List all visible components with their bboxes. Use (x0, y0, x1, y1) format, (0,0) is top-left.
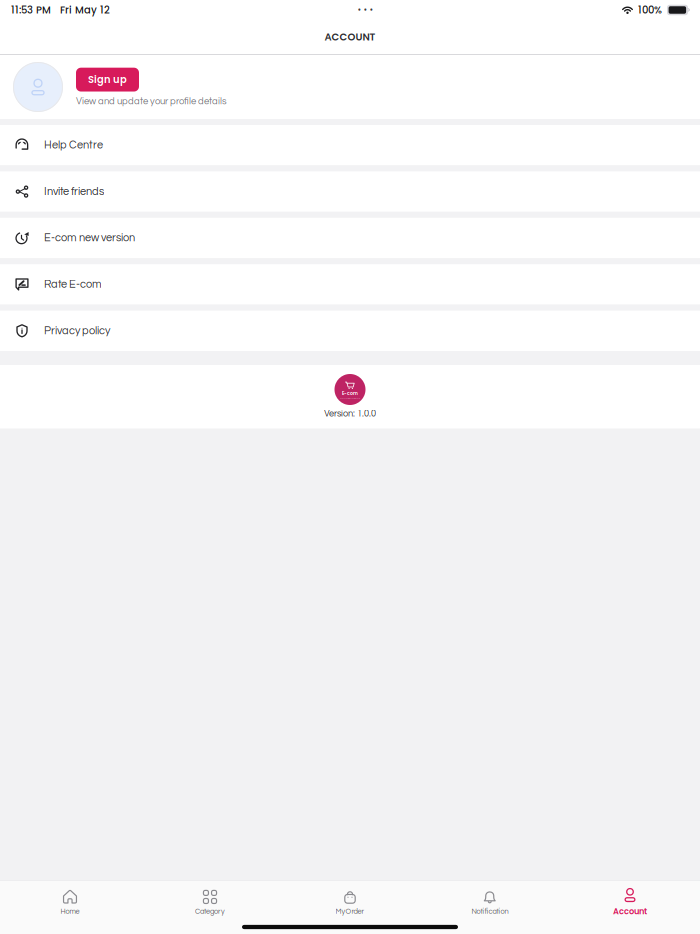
button[interactable]: Help Centre (0, 125, 700, 165)
staticText: Rate E-com (44, 279, 102, 290)
button[interactable]: MyOrder (280, 885, 420, 920)
staticText: 100% (638, 3, 662, 17)
staticText: E-com (342, 390, 358, 396)
staticText: Version: 1.0.0 (324, 409, 376, 418)
staticText: 11:53 PM (11, 3, 51, 17)
staticText: Invite friends (44, 186, 104, 197)
staticText: • • • (357, 4, 373, 16)
button[interactable]: E-com new version (0, 218, 700, 258)
staticText: ONLINE SHOPPING (339, 397, 360, 399)
staticText: Fri May 12 (60, 3, 110, 17)
button[interactable]: Rate E-com (0, 264, 700, 305)
staticText: E-com new version (44, 232, 135, 244)
staticText: Sign up (88, 73, 127, 87)
button[interactable]: Privacy policy (0, 311, 700, 351)
button[interactable]: Category (140, 885, 280, 920)
staticText: MyOrder (335, 908, 364, 915)
staticText: Category (195, 908, 225, 915)
staticText: Home (60, 908, 79, 915)
staticText: Privacy policy (44, 325, 110, 336)
button[interactable]: Invite friends (0, 171, 700, 212)
staticText: Account (613, 906, 647, 917)
staticText: Help Centre (44, 139, 103, 151)
button[interactable]: Sign up (76, 68, 139, 92)
staticText: Notification (471, 908, 508, 915)
staticText: View and update your profile details (76, 96, 227, 106)
button[interactable]: Home (0, 885, 140, 920)
staticText: ACCOUNT (324, 30, 375, 44)
button[interactable]: Notification (420, 885, 560, 920)
button[interactable]: Account (560, 885, 700, 920)
